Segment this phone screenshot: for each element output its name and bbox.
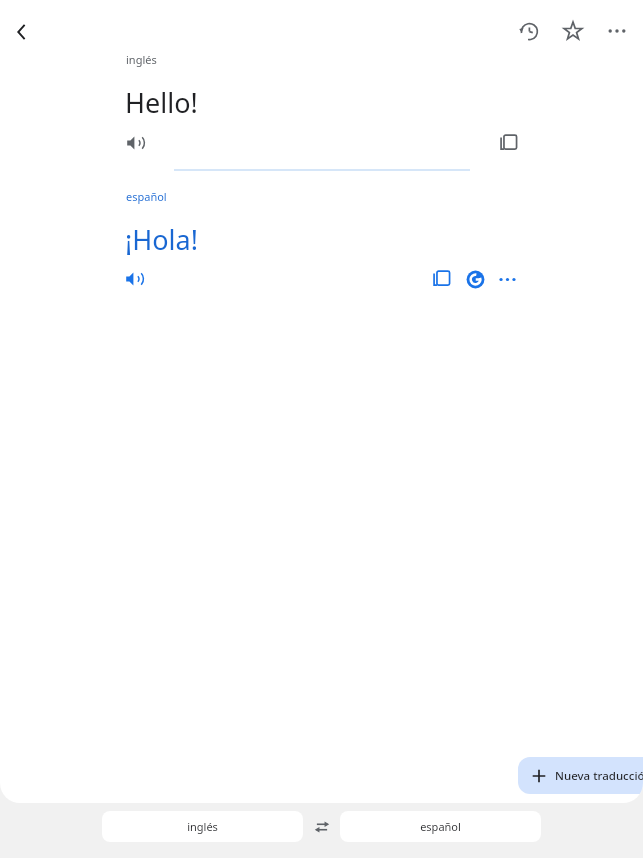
button[interactable]: History [507,9,551,53]
staticText: español [420,819,461,834]
staticText: español [126,189,167,204]
staticText: inglés [126,52,157,67]
button[interactable]: Back [0,10,44,54]
button[interactable]: Nueva traducción [518,757,643,794]
staticText: ¡Hola! [125,221,198,258]
button[interactable]: Save [551,9,595,53]
staticText: Nueva traducción [555,768,643,784]
button[interactable]: Copy source text [487,121,531,165]
staticText: Hello! [125,84,198,121]
button[interactable]: More options [595,9,639,53]
button[interactable]: More translation options [485,257,529,301]
button[interactable]: español [340,811,541,842]
button[interactable]: inglés [102,811,303,842]
staticText: inglés [187,819,218,834]
button[interactable]: Search on Google [453,257,497,301]
button[interactable]: Listen [114,121,158,165]
button[interactable]: Swap languages [303,811,340,842]
button[interactable]: Copy translation [420,257,464,301]
button[interactable]: Listen translation [113,257,157,301]
